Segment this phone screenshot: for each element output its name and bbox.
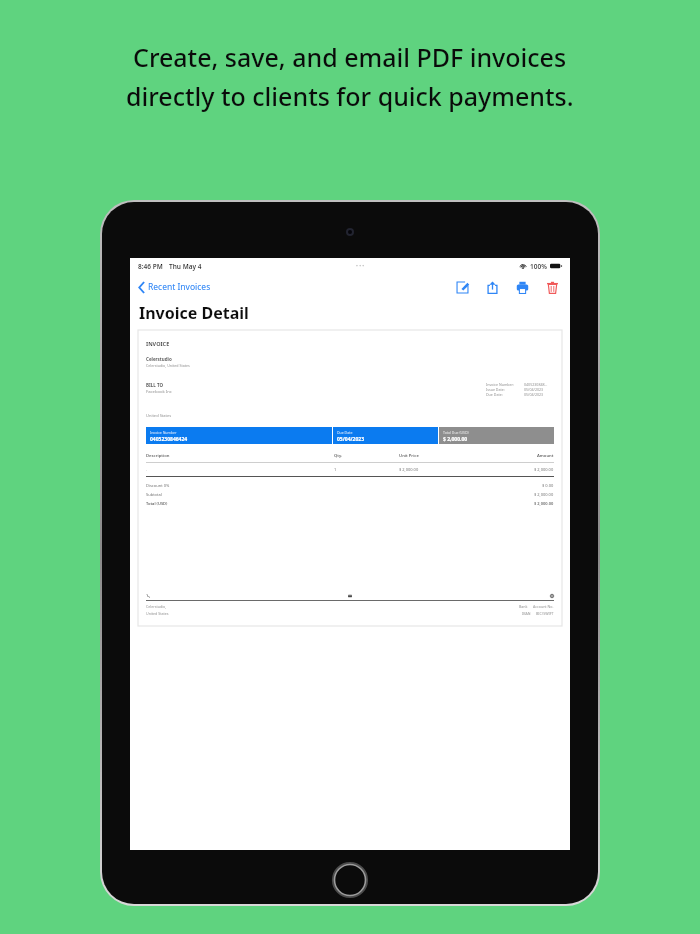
staticText: INVOICE [146,340,170,347]
staticText: Qty. [334,453,343,459]
staticText: Thu May 4 [169,262,202,271]
staticText: Celerstudio, [146,604,167,609]
staticText: Discount 0% [146,483,170,488]
staticText: 05/04/2023 [524,387,544,392]
staticText: $ 0.00 [542,483,554,488]
staticText: United States [146,413,172,418]
staticText: $ 2,000.00 [534,501,554,506]
staticText: Invoice Detail [139,302,249,324]
staticText: Total (USD) [146,501,168,506]
staticText: Amount [537,453,554,459]
staticText: BIC/SWIFT [536,611,554,616]
staticText: Total Due (USD) [443,430,469,435]
staticText: Due Date: [486,392,503,397]
staticText: Account No. [533,604,554,609]
button[interactable]: Edit [452,277,473,298]
staticText: Facebook Inc [146,389,172,395]
staticText: Invoice Number: [486,382,515,387]
staticText: Unit Price [399,453,419,459]
staticText: $ 2,000.00 [534,467,554,472]
staticText: $ 2,000.00 [534,492,554,497]
staticText: Celerstudio [146,356,172,362]
staticText: IBAN [522,611,531,616]
staticText: directly to clients for quick payments. [126,79,574,113]
button[interactable]: Share [482,277,503,298]
staticText: • • • [356,263,365,270]
staticText: . [146,467,148,472]
staticText: Bank [519,604,528,609]
staticText: 8:46 PM [138,262,163,271]
button[interactable]: Delete [542,277,563,298]
staticText: 0405230848… [524,382,548,387]
staticText: 100% [530,262,547,271]
staticText: Description [146,453,170,459]
staticText: 05/04/2023 [337,436,365,443]
staticText: $ 2,000.00 [399,467,419,472]
staticText: Create, save, and email PDF invoices [133,40,567,74]
staticText: 05/04/2023 [524,392,544,397]
staticText: Subtotal [146,492,162,497]
staticText: Recent Invoices [148,281,211,293]
staticText: BILL TO [146,382,164,388]
staticText: 1 [334,467,337,472]
button[interactable]: Print [512,277,533,298]
button[interactable]: Recent Invoices [137,278,213,296]
staticText: Due Date [337,430,353,435]
staticText: $ 2,000.00 [443,436,468,443]
staticText: Issue Date: [486,387,505,392]
staticText: 0405230846424 [150,436,188,443]
staticText: United States [146,611,169,616]
staticText: Invoice Number [150,430,177,435]
staticText: Celerstudio, United States [146,363,190,368]
